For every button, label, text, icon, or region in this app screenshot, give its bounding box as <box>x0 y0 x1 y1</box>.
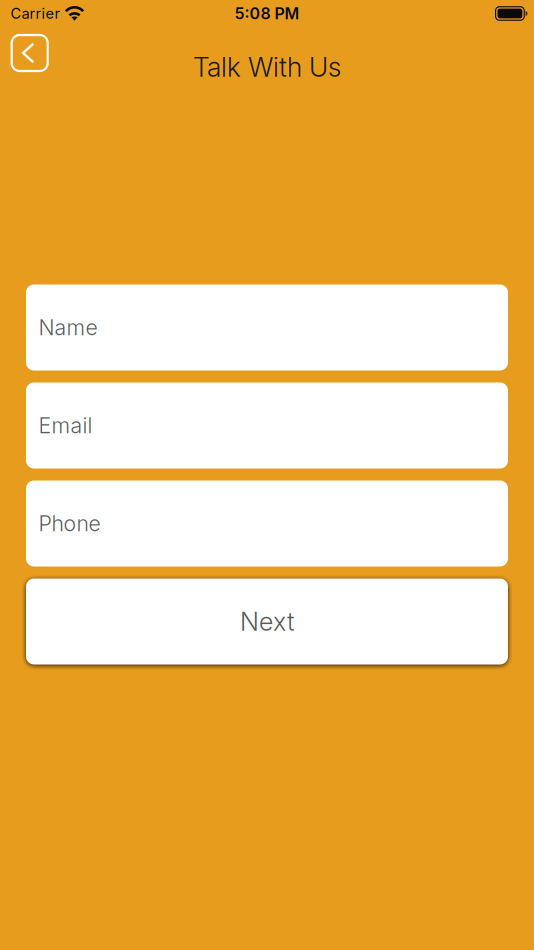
staticText: Carrier <box>10 5 60 22</box>
staticText: Email <box>38 413 92 438</box>
button[interactable]: Back <box>12 35 48 71</box>
button[interactable]: Email <box>26 382 508 468</box>
staticText: Talk With Us <box>193 51 341 83</box>
button[interactable]: Name <box>26 284 508 370</box>
button[interactable]: Phone <box>26 480 508 566</box>
staticText: Next <box>240 606 294 637</box>
staticText: 5:08 PM <box>234 4 299 23</box>
button[interactable]: Next <box>26 578 508 664</box>
staticText: Name <box>38 315 97 340</box>
staticText: Phone <box>38 511 100 536</box>
